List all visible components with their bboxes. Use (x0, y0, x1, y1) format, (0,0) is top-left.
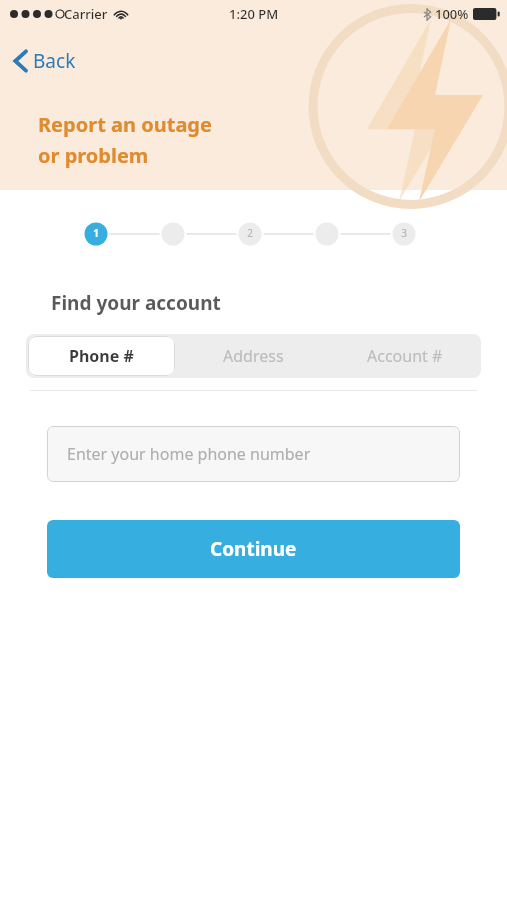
button[interactable]: Phone # (28, 336, 175, 376)
button[interactable]: 1 (85, 222, 107, 244)
staticText: Carrier (64, 5, 108, 23)
staticText: Continue (210, 536, 297, 562)
staticText: Report an outage (38, 111, 212, 138)
button[interactable]: Account # (329, 334, 481, 378)
button[interactable]: Continue (47, 520, 460, 578)
staticText: 1:20 PM (229, 5, 279, 23)
staticText: 3 (401, 226, 407, 240)
button[interactable]: 3 (393, 222, 415, 244)
button[interactable]: Enter your home phone number (47, 426, 460, 482)
button[interactable]: Address (177, 334, 329, 378)
button[interactable]: Back (8, 44, 82, 78)
button[interactable]: 2 (239, 222, 261, 244)
staticText: or problem (38, 142, 149, 169)
staticText: Phone # (69, 345, 134, 367)
staticText: Account # (367, 345, 443, 367)
staticText: Back (33, 48, 76, 74)
staticText: 2 (247, 226, 253, 240)
staticText: Address (223, 345, 284, 367)
staticText: Enter your home phone number (67, 443, 311, 465)
staticText: Find your account (51, 290, 221, 316)
staticText: 100% (435, 5, 469, 23)
staticText: 1 (93, 226, 99, 240)
